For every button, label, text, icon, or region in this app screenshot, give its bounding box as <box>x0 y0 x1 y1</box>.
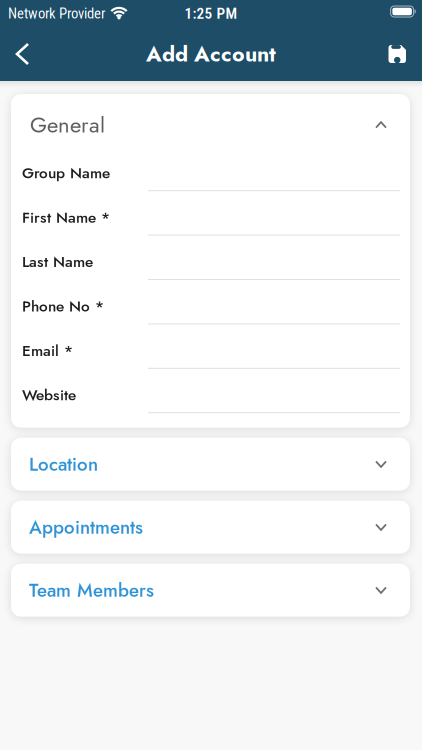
staticText: Appointments <box>29 514 143 541</box>
staticText: Website <box>22 384 76 406</box>
staticText: First Name * <box>22 206 110 228</box>
button[interactable]: General <box>11 94 410 141</box>
staticText: Network Provider <box>8 5 105 22</box>
staticText: Email * <box>22 339 73 362</box>
staticText: General <box>30 109 105 141</box>
button[interactable]: Location <box>11 438 410 491</box>
staticText: Phone No * <box>22 295 104 317</box>
button[interactable]: Team Members <box>11 564 410 617</box>
staticText: Team Members <box>29 577 154 604</box>
staticText: Group Name <box>22 162 110 184</box>
button[interactable]: Appointments <box>11 501 410 554</box>
staticText: Location <box>29 451 98 478</box>
staticText: Last Name <box>22 251 93 273</box>
staticText: Add Account <box>146 39 276 69</box>
staticText: 1:25 PM <box>184 4 237 22</box>
button[interactable]: Back <box>0 27 44 81</box>
button[interactable]: Save <box>376 27 422 81</box>
